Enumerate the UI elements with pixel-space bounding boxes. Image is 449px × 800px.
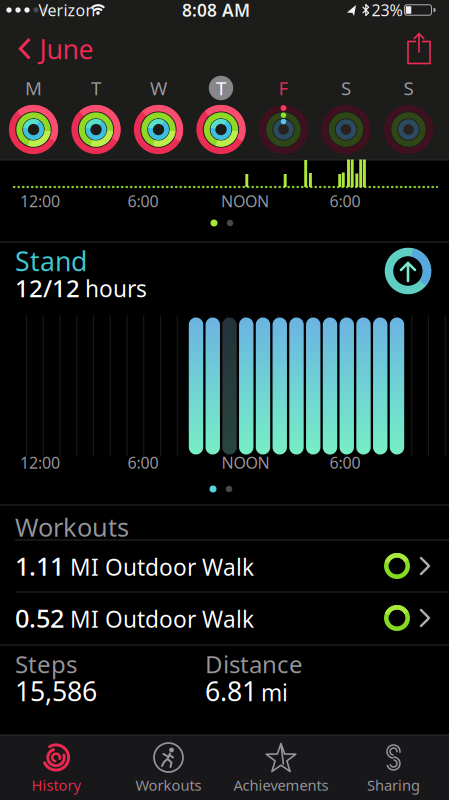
staticText: T	[216, 76, 226, 100]
staticText: W	[150, 76, 167, 100]
staticText: F	[278, 76, 288, 100]
button[interactable]: Share	[407, 32, 431, 65]
button[interactable]: S	[379, 68, 437, 156]
staticText: NOON	[221, 190, 269, 212]
button[interactable]: S	[317, 68, 375, 156]
staticText: MI Outdoor Walk	[70, 604, 254, 634]
staticText: 12/12	[15, 272, 80, 304]
staticText: T	[91, 76, 101, 100]
staticText: 15,586	[15, 673, 97, 709]
button[interactable]: 0.52	[0, 592, 449, 644]
staticText: Achievements	[233, 775, 328, 795]
staticText: 6:00	[329, 190, 360, 212]
staticText: Stand	[15, 243, 87, 279]
staticText: 6:00	[329, 452, 360, 473]
staticText: 6:00	[127, 190, 158, 212]
button[interactable]: T	[192, 68, 250, 156]
staticText: 8:08 AM	[182, 0, 250, 21]
staticText: 1.11	[15, 549, 64, 583]
staticText: NOON	[221, 452, 269, 473]
button[interactable]: T	[67, 68, 125, 156]
staticText: 12:00	[20, 190, 60, 212]
button[interactable]: Achievements	[225, 738, 337, 798]
staticText: MI Outdoor Walk	[70, 552, 254, 582]
button[interactable]: June	[10, 32, 102, 66]
button[interactable]: W	[129, 68, 187, 156]
staticText: Steps	[15, 648, 77, 680]
button[interactable]: F	[254, 68, 312, 156]
staticText: 12:00	[20, 452, 60, 473]
staticText: June	[39, 31, 93, 67]
button[interactable]: M	[4, 68, 62, 156]
button[interactable]: History	[0, 738, 112, 798]
staticText: 6:00	[127, 452, 158, 473]
staticText: Workouts	[135, 775, 201, 795]
staticText: S	[341, 76, 351, 100]
staticText: mi	[261, 677, 288, 708]
button[interactable]: 1.11	[0, 540, 449, 592]
button[interactable]: Workouts	[112, 738, 224, 798]
staticText: History	[31, 775, 80, 795]
button[interactable]: Sharing	[337, 738, 449, 798]
staticText: hours	[85, 273, 147, 304]
staticText: M	[25, 76, 42, 100]
staticText: Sharing	[367, 775, 420, 795]
staticText: 6.81	[205, 673, 257, 709]
staticText: 23%	[371, 0, 402, 21]
staticText: Verizon	[38, 0, 95, 21]
staticText: 0.52	[15, 601, 64, 635]
staticText: Workouts	[15, 510, 129, 544]
staticText: S	[403, 76, 413, 100]
staticText: Distance	[205, 648, 303, 680]
